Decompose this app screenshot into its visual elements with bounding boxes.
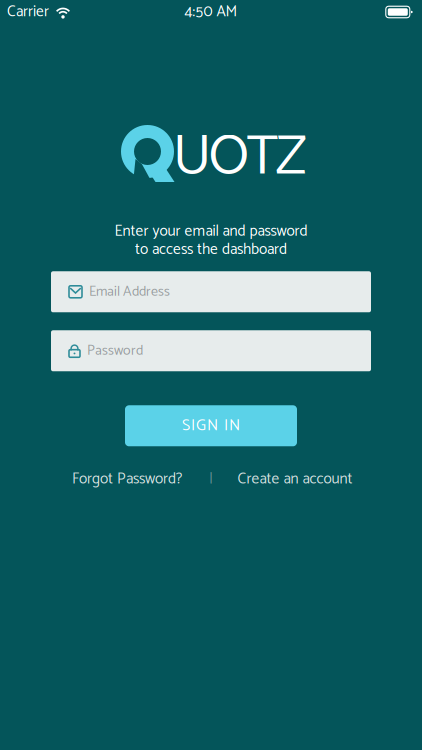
- button[interactable]: Create an account: [231, 468, 359, 490]
- staticText: |: [209, 467, 213, 492]
- button[interactable]: SIGN IN: [125, 405, 297, 446]
- staticText: Create an account: [237, 467, 352, 492]
- staticText: UOTZ: [173, 112, 306, 204]
- staticText: Password: [87, 339, 143, 362]
- staticText: Forgot Password?: [72, 467, 182, 492]
- staticText: 4:50 AM: [184, 0, 237, 24]
- staticText: Email Address: [89, 280, 170, 303]
- staticText: Enter your email and password: [114, 219, 307, 244]
- staticText: to access the dashboard: [135, 237, 287, 262]
- button[interactable]: Forgot Password?: [63, 468, 191, 490]
- staticText: Carrier: [7, 0, 49, 24]
- staticText: SIGN IN: [182, 413, 240, 439]
